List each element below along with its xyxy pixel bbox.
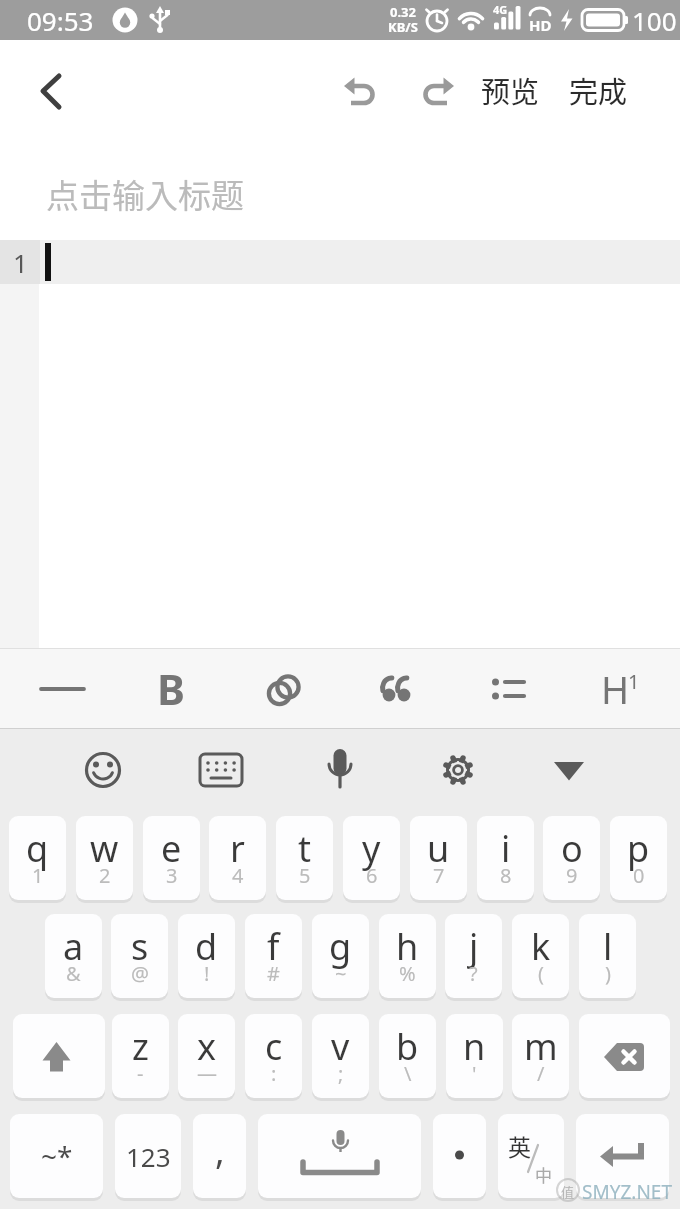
- staticText: 3: [166, 862, 178, 889]
- button[interactable]: [313, 740, 367, 800]
- button[interactable]: 英: [498, 1114, 564, 1198]
- staticText: 中: [535, 1162, 552, 1187]
- button[interactable]: z: [112, 1014, 169, 1098]
- button[interactable]: [410, 66, 458, 114]
- staticText: b: [396, 1022, 419, 1071]
- button[interactable]: t: [276, 816, 333, 900]
- staticText: ,: [215, 1126, 225, 1175]
- staticText: ': [472, 1060, 477, 1087]
- button[interactable]: [579, 1014, 670, 1098]
- staticText: p: [627, 824, 650, 873]
- button[interactable]: p: [610, 816, 667, 900]
- staticText: 7: [433, 862, 445, 889]
- button[interactable]: g: [312, 914, 369, 998]
- staticText: B: [157, 660, 185, 717]
- staticText: 9: [566, 862, 578, 889]
- staticText: i: [501, 824, 511, 873]
- button[interactable]: y: [343, 816, 400, 900]
- button[interactable]: 点击输入标题: [0, 140, 680, 240]
- button[interactable]: [13, 1014, 105, 1098]
- button[interactable]: [76, 740, 130, 800]
- button[interactable]: e: [143, 816, 200, 900]
- staticText: —: [197, 1060, 217, 1087]
- button[interactable]: [542, 740, 596, 800]
- button[interactable]: 预览: [478, 64, 542, 116]
- staticText: 2: [99, 862, 111, 889]
- button[interactable]: [113, 648, 226, 728]
- button[interactable]: [0, 648, 113, 728]
- button[interactable]: i: [477, 816, 534, 900]
- button[interactable]: 完成: [566, 64, 630, 116]
- button[interactable]: [340, 648, 453, 728]
- staticText: m: [524, 1022, 558, 1071]
- staticText: 8: [500, 862, 512, 889]
- staticText: ?: [469, 960, 478, 987]
- button[interactable]: x: [178, 1014, 235, 1098]
- button[interactable]: v: [312, 1014, 369, 1098]
- staticText: v: [331, 1022, 350, 1071]
- staticText: a: [63, 922, 84, 971]
- staticText: 英: [508, 1129, 531, 1162]
- button[interactable]: l: [579, 914, 636, 998]
- button[interactable]: s: [111, 914, 168, 998]
- button[interactable]: f: [245, 914, 302, 998]
- staticText: g: [329, 922, 352, 971]
- button[interactable]: ,: [193, 1114, 246, 1198]
- staticText: ): [605, 960, 611, 987]
- button[interactable]: u: [410, 816, 467, 900]
- staticText: l: [603, 922, 613, 971]
- staticText: 0.32: [390, 3, 416, 21]
- button[interactable]: ~*: [10, 1114, 103, 1198]
- staticText: y: [362, 824, 381, 873]
- button[interactable]: [227, 648, 340, 728]
- staticText: @: [131, 960, 149, 987]
- staticText: d: [195, 922, 218, 971]
- staticText: 值: [561, 1182, 575, 1201]
- staticText: u: [427, 824, 450, 873]
- button[interactable]: [433, 1114, 486, 1198]
- button[interactable]: k: [512, 914, 569, 998]
- staticText: o: [561, 824, 583, 873]
- button[interactable]: [258, 1114, 421, 1198]
- staticText: e: [161, 824, 182, 873]
- button[interactable]: [576, 1114, 669, 1198]
- button[interactable]: j: [445, 914, 502, 998]
- button[interactable]: d: [178, 914, 235, 998]
- button[interactable]: c: [245, 1014, 302, 1098]
- button[interactable]: o: [543, 816, 600, 900]
- staticText: &: [66, 960, 81, 987]
- button[interactable]: [567, 648, 680, 728]
- staticText: H: [601, 663, 630, 715]
- button[interactable]: w: [76, 816, 133, 900]
- button[interactable]: [431, 740, 485, 800]
- button[interactable]: q: [9, 816, 66, 900]
- button[interactable]: b: [379, 1014, 436, 1098]
- staticText: HD: [529, 15, 552, 35]
- staticText: s: [131, 922, 149, 971]
- staticText: KB/S: [388, 18, 418, 36]
- staticText: 09:53: [27, 3, 94, 38]
- staticText: x: [197, 1022, 217, 1071]
- staticText: z: [132, 1022, 149, 1071]
- button[interactable]: h: [379, 914, 436, 998]
- staticText: c: [265, 1022, 283, 1071]
- staticText: 1: [628, 668, 640, 695]
- staticText: t: [298, 824, 311, 873]
- staticText: ~: [335, 960, 347, 987]
- button[interactable]: r: [209, 816, 266, 900]
- staticText: j: [469, 922, 479, 971]
- button[interactable]: [453, 648, 566, 728]
- button[interactable]: m: [512, 1014, 569, 1098]
- button[interactable]: 123: [115, 1114, 181, 1198]
- button[interactable]: a: [45, 914, 102, 998]
- staticText: ;: [338, 1060, 344, 1087]
- button[interactable]: [338, 66, 386, 114]
- staticText: 预览: [481, 69, 540, 111]
- button[interactable]: [194, 740, 248, 800]
- button[interactable]: n: [446, 1014, 503, 1098]
- staticText: -: [137, 1060, 144, 1087]
- staticText: h: [396, 922, 419, 971]
- button[interactable]: [26, 60, 82, 120]
- staticText: :: [271, 1060, 277, 1087]
- button[interactable]: [0, 240, 680, 284]
